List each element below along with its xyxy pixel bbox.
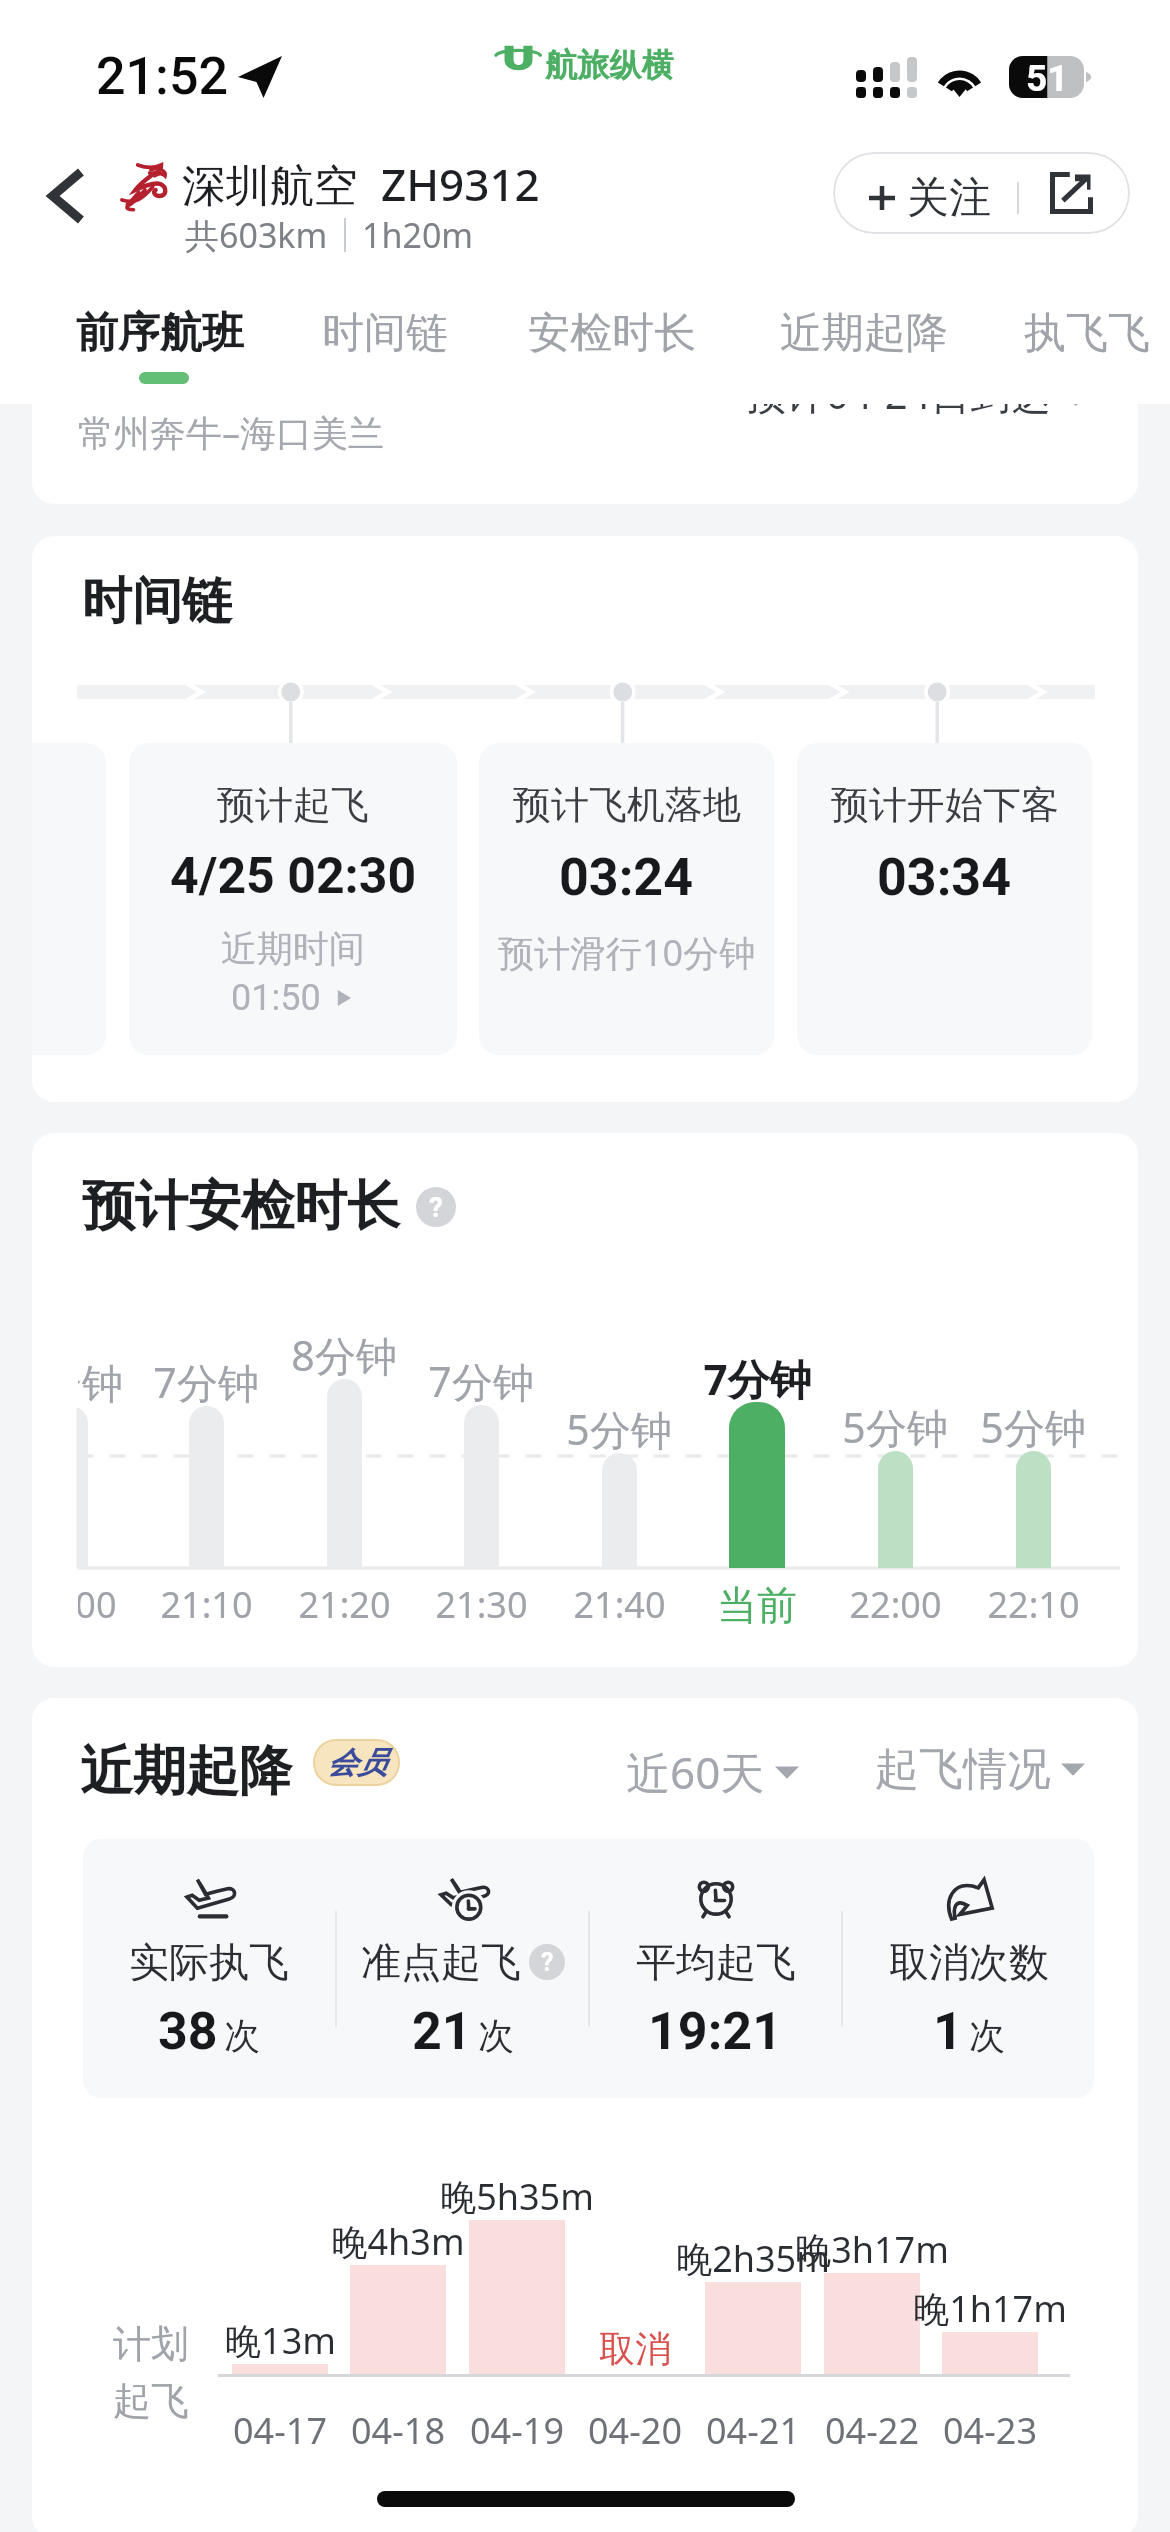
- staticText: 22:00: [849, 1580, 942, 1629]
- staticText: 04-23: [943, 2406, 1037, 2455]
- staticText: 计划: [113, 2320, 189, 2368]
- staticText: 取消: [599, 2326, 671, 2371]
- button[interactable]: 准点起飞: [337, 1875, 588, 2062]
- button[interactable]: 近期起降: [780, 307, 948, 360]
- staticText: 04-22: [825, 2406, 919, 2455]
- staticText: 实际执飞: [129, 1937, 289, 1987]
- staticText: 21:20: [298, 1580, 391, 1629]
- staticText: 预计起飞: [217, 781, 369, 829]
- staticText: 04-21: [706, 2406, 800, 2455]
- staticText: 起飞: [113, 2377, 189, 2425]
- staticText: 03:24: [559, 847, 694, 908]
- staticText: 4/25 02:30: [170, 847, 417, 906]
- staticText: 近期起降: [80, 1738, 292, 1805]
- staticText: 预计安检时长: [82, 1173, 400, 1240]
- staticText: 晚5h35m: [440, 2172, 594, 2221]
- button[interactable]: 执飞飞: [1024, 307, 1150, 360]
- button[interactable]: 取消次数: [843, 1875, 1094, 2062]
- staticText: 7分钟: [78, 1354, 123, 1410]
- staticText: 21:30: [435, 1580, 528, 1629]
- staticText: 近期时间: [221, 926, 365, 971]
- staticText: 次: [224, 2013, 260, 2058]
- staticText: 22:10: [987, 1580, 1080, 1629]
- staticText: 1: [933, 2001, 963, 2062]
- staticText: 19:21: [648, 2001, 783, 2062]
- button[interactable]: 近60天: [626, 1742, 799, 1802]
- staticText: 前序航班: [76, 307, 244, 360]
- staticText: 平均起飞: [636, 1937, 796, 1987]
- button[interactable]: 安检时长: [528, 307, 696, 360]
- staticText: 21:52: [96, 46, 229, 107]
- staticText: 时间链: [322, 307, 448, 360]
- staticText: 安检时长: [528, 307, 696, 360]
- staticText: 准点起飞: [361, 1937, 521, 1987]
- button[interactable]: 起飞情况: [875, 1742, 1085, 1797]
- staticText: 常州奔牛–海口美兰: [78, 408, 384, 457]
- staticText: 5分钟: [842, 1399, 948, 1455]
- staticText: 5分钟: [566, 1401, 672, 1457]
- staticText: 预计04-24日到达: [746, 366, 1051, 421]
- staticText: 04-17: [233, 2406, 327, 2455]
- staticText: 21: [412, 2001, 472, 2062]
- staticText: 8分钟: [291, 1327, 397, 1383]
- button[interactable]: 平均起飞: [590, 1875, 841, 2062]
- button[interactable]: 关注: [833, 152, 1130, 234]
- staticText: 21:10: [160, 1580, 253, 1629]
- staticText: 深圳航空 ZH9312: [182, 154, 540, 214]
- staticText: 晚2h35m: [676, 2234, 830, 2283]
- staticText: 当前: [717, 1580, 797, 1630]
- staticText: 次: [969, 2013, 1005, 2058]
- staticText: 7分钟: [428, 1353, 534, 1409]
- button[interactable]: 预计开始下客: [797, 743, 1092, 1055]
- staticText: 04-18: [351, 2406, 445, 2455]
- staticText: 03:34: [877, 847, 1012, 908]
- button[interactable]: Back: [26, 156, 106, 236]
- staticText: 起飞情况: [875, 1742, 1051, 1797]
- staticText: 近期起降: [780, 307, 948, 360]
- staticText: 04-19: [470, 2406, 564, 2455]
- staticText: 21:40: [573, 1580, 666, 1629]
- staticText: 04-20: [588, 2406, 682, 2455]
- staticText: 7分钟: [153, 1354, 259, 1410]
- staticText: 近60天: [626, 1742, 765, 1802]
- button[interactable]: 前序航班: [76, 307, 244, 360]
- staticText: 次: [478, 2013, 514, 2058]
- staticText: 预计滑行10分钟: [498, 928, 756, 977]
- staticText: 5分钟: [980, 1399, 1086, 1455]
- staticText: 预计飞机落地: [513, 781, 741, 829]
- staticText: ?: [541, 1948, 554, 1977]
- staticText: 执飞飞: [1024, 307, 1150, 360]
- staticText: 晚4h3m: [331, 2217, 465, 2266]
- button[interactable]: 常州奔牛–海口美兰: [32, 290, 1138, 504]
- staticText: 关注: [907, 172, 991, 225]
- button[interactable]: 预计起飞: [129, 743, 457, 1055]
- staticText: 38: [158, 2001, 218, 2062]
- staticText: 晚1h17m: [913, 2284, 1067, 2333]
- staticText: 晚13m: [225, 2316, 336, 2365]
- staticText: 共603km: [185, 212, 328, 258]
- staticText: 航旅纵横: [545, 45, 674, 85]
- staticText: 取消次数: [889, 1937, 1049, 1987]
- button[interactable]: 预计飞机落地: [479, 743, 774, 1055]
- staticText: 1h20m: [362, 212, 474, 258]
- button[interactable]: 时间链: [322, 307, 448, 360]
- staticText: 预计开始下客: [831, 781, 1059, 829]
- button[interactable]: 实际执飞: [83, 1875, 335, 2062]
- staticText: 时间链: [82, 570, 232, 633]
- button[interactable]: Help: [416, 1187, 456, 1227]
- staticText: 会员: [327, 1744, 387, 1782]
- staticText: 01:50: [231, 977, 321, 1019]
- staticText: 21:00: [78, 1580, 117, 1629]
- staticText: 晚3h17m: [795, 2225, 949, 2274]
- staticText: 51: [1026, 57, 1069, 99]
- staticText: ?: [429, 1191, 443, 1224]
- staticText: 7分钟: [703, 1350, 812, 1407]
